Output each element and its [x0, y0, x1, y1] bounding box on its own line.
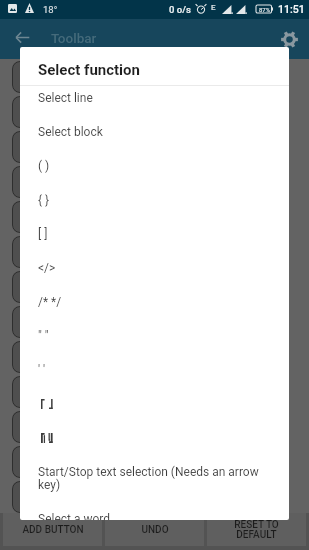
button[interactable]: UNDO — [105, 513, 204, 546]
staticText: " " — [38, 329, 49, 343]
button[interactable]: Select block — [20, 121, 289, 155]
staticText: RESET TO DEFAULT — [234, 519, 279, 541]
button[interactable]: ( ) — [20, 155, 289, 189]
staticText: E — [211, 3, 216, 12]
button[interactable]: Select a word — [20, 508, 289, 520]
button[interactable] — [12, 516, 58, 548]
staticText: Start/Stop text selection (Needs an arro… — [38, 465, 273, 492]
staticText: UNDO — [141, 524, 169, 536]
staticText: ADD BUTTON — [22, 524, 84, 536]
staticText: </> — [38, 261, 56, 275]
button[interactable]: Settings — [271, 21, 307, 57]
staticText: ' ' — [38, 363, 46, 377]
staticText: Select line — [38, 91, 93, 105]
button[interactable]: " " — [20, 325, 289, 359]
button[interactable] — [12, 341, 58, 373]
button[interactable]: Start/Stop text selection (Needs an arro… — [20, 461, 289, 508]
button[interactable] — [12, 131, 58, 163]
button[interactable]: Select line — [20, 87, 289, 121]
button[interactable] — [12, 96, 58, 128]
button[interactable] — [20, 427, 289, 461]
staticText: 87% — [259, 6, 271, 13]
button[interactable] — [12, 376, 58, 408]
button[interactable]: { } — [20, 189, 289, 223]
button[interactable] — [12, 271, 58, 303]
button[interactable] — [12, 61, 58, 93]
staticText: 11:51 — [278, 3, 305, 15]
button[interactable] — [12, 201, 58, 233]
button[interactable] — [12, 306, 58, 338]
staticText: 18° — [43, 4, 58, 15]
button[interactable]: Back — [4, 19, 40, 55]
staticText: Select block — [38, 125, 103, 139]
staticText: 0 o/s — [169, 4, 191, 15]
staticText: Select function — [38, 61, 140, 79]
staticText: Select a word — [38, 512, 111, 520]
button[interactable]: </> — [20, 257, 289, 291]
button[interactable]: ADD BUTTON — [3, 513, 102, 546]
staticText: ( ) — [38, 159, 50, 173]
staticText: { } — [38, 193, 50, 207]
button[interactable]: [ ] — [20, 223, 289, 257]
button[interactable]: /* */ — [20, 291, 289, 325]
button[interactable]: RESET TO DEFAULT — [207, 513, 306, 546]
button[interactable] — [12, 446, 58, 478]
button[interactable] — [12, 481, 58, 513]
button[interactable] — [12, 411, 58, 443]
staticText: [ ] — [38, 227, 48, 241]
staticText: Toolbar — [51, 30, 97, 46]
button[interactable] — [12, 166, 58, 198]
staticText: /* */ — [38, 295, 62, 309]
button[interactable] — [12, 236, 58, 268]
button[interactable] — [20, 393, 289, 427]
